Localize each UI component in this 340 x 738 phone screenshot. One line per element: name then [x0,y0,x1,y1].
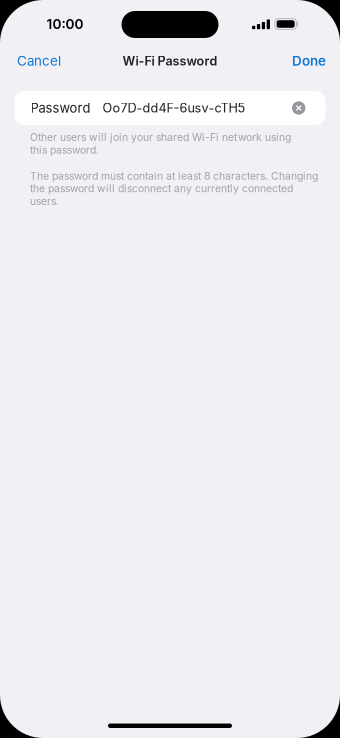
staticText: 10:00 [46,16,83,32]
staticText: Done [292,53,326,69]
button[interactable]: Cancel [17,47,65,75]
staticText: Cancel [17,53,61,69]
staticText: The password must contain at least 8 cha… [30,170,318,207]
staticText: Other users will join your shared Wi-Fi … [30,131,291,156]
button[interactable]: Clear password [290,91,325,125]
button[interactable]: Done [288,47,326,75]
staticText: Oo7D-dd4F-6usv-cTH5 [102,100,245,116]
button[interactable]: Password [14,91,290,125]
staticText: Password [30,100,90,116]
staticText: Wi-Fi Password [122,53,217,69]
